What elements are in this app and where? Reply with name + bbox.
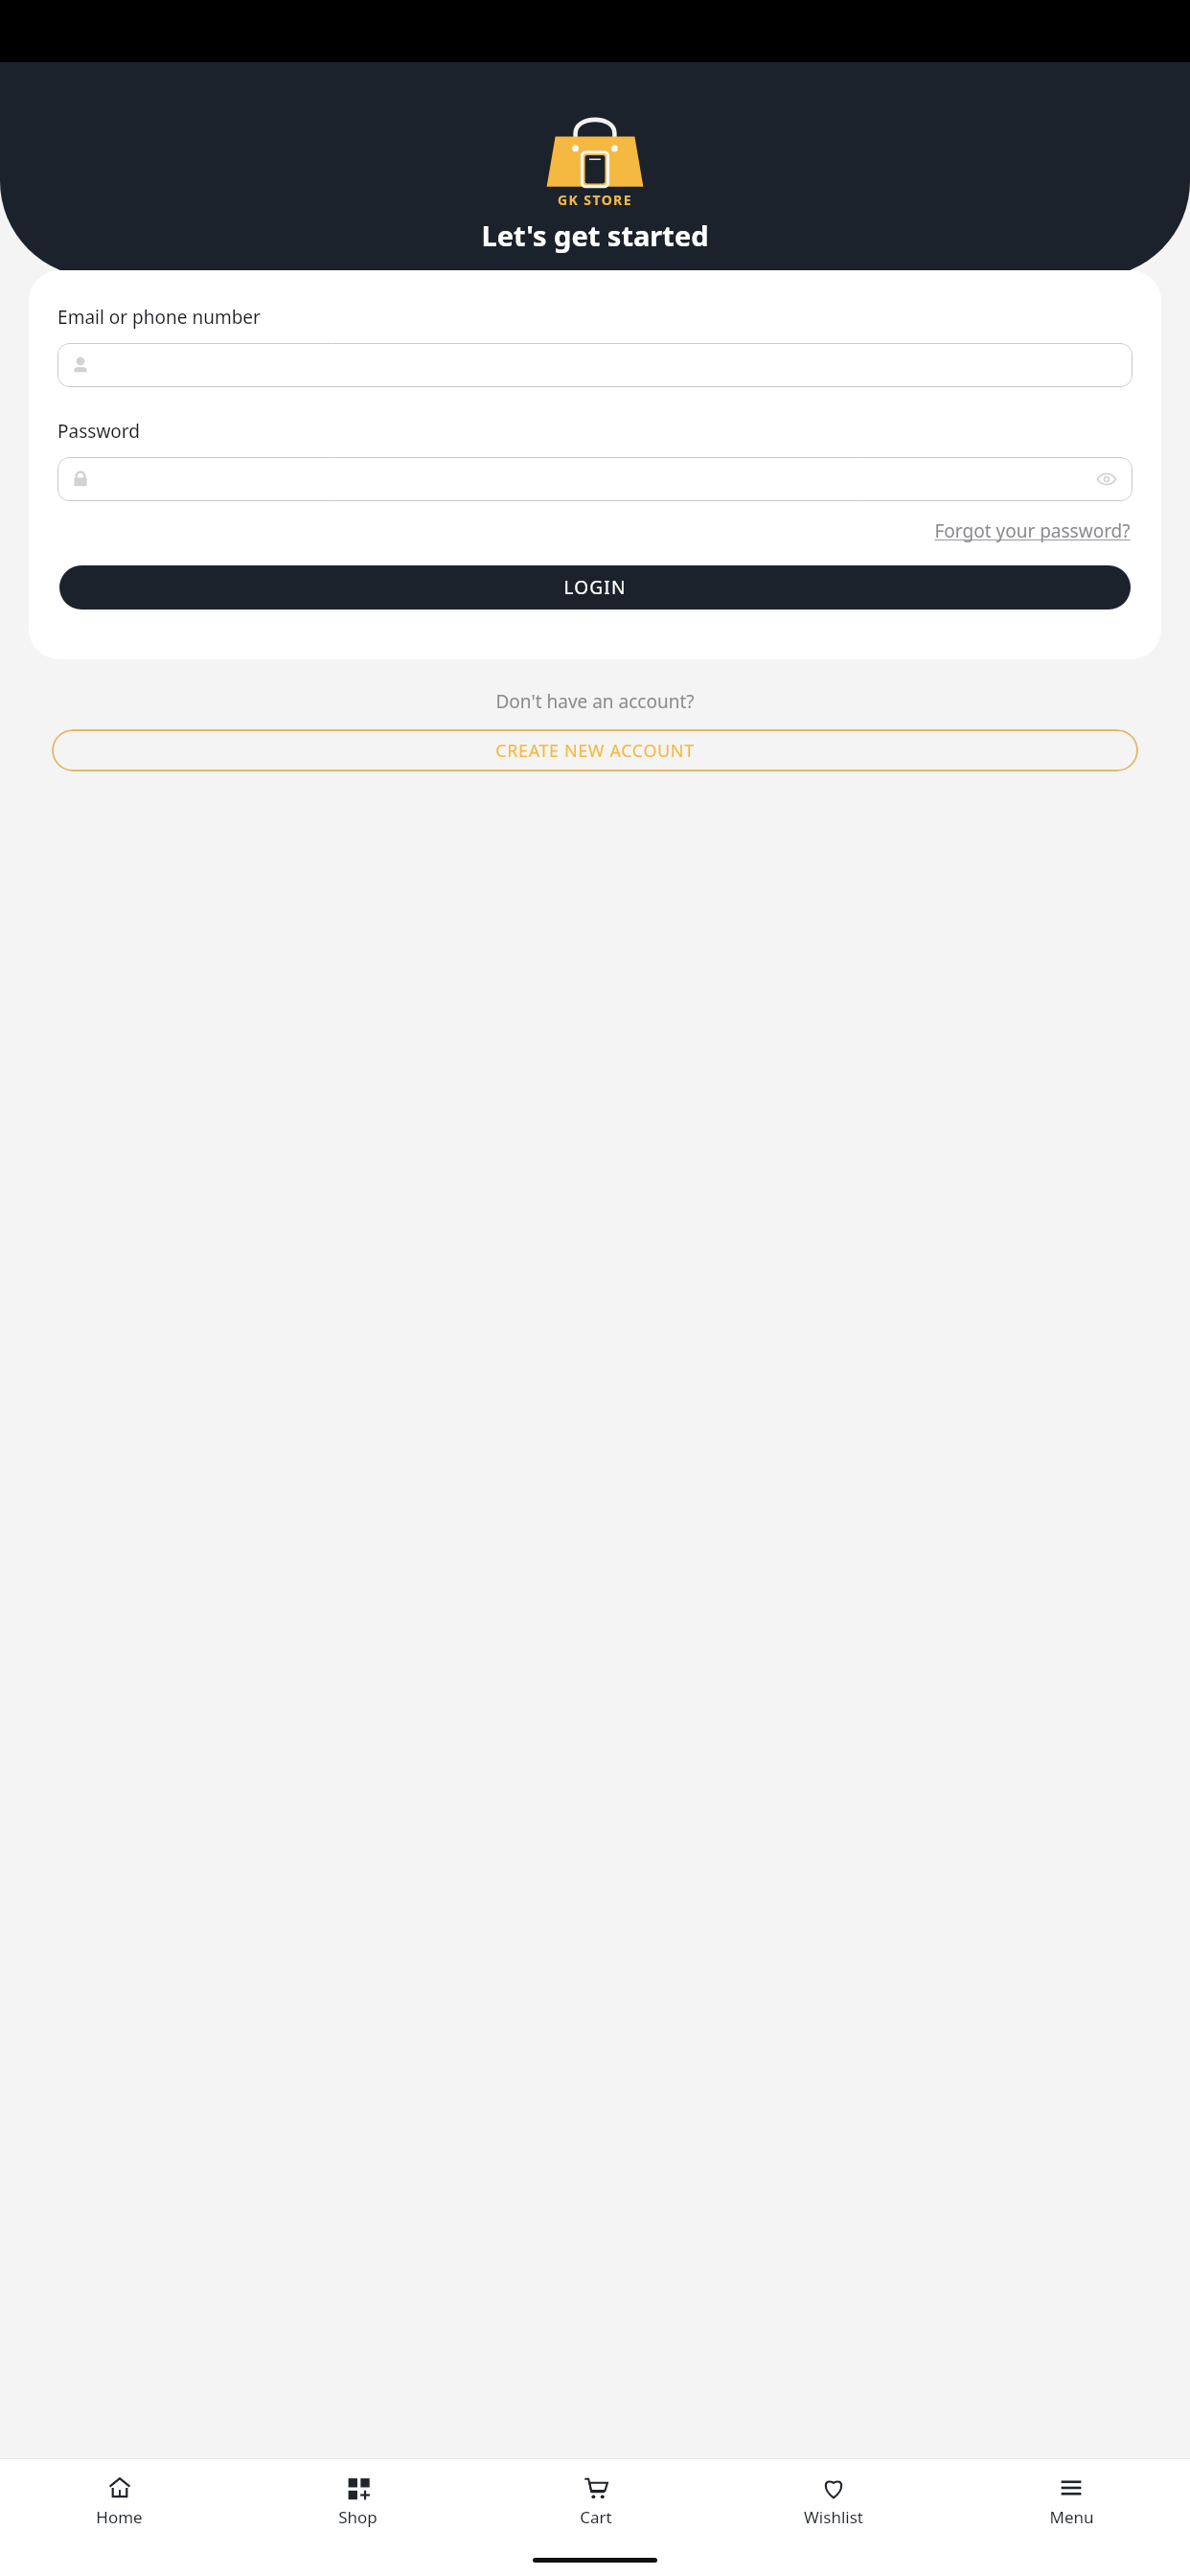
button[interactable]: Show password	[57, 457, 1133, 501]
staticText: Email or phone number	[57, 305, 261, 330]
button[interactable]: CREATE NEW ACCOUNT	[52, 729, 1138, 771]
staticText: Wishlist	[804, 2506, 863, 2528]
button[interactable]: Menu	[952, 2470, 1190, 2534]
staticText: LOGIN	[563, 575, 627, 600]
button[interactable]: Show password	[1094, 467, 1119, 492]
button[interactable]: Wishlist	[715, 2470, 952, 2534]
button[interactable]: Forgot your password?	[932, 515, 1133, 547]
staticText: Menu	[1049, 2506, 1094, 2528]
staticText: GK STORE	[558, 191, 632, 209]
staticText: Cart	[580, 2506, 612, 2528]
button[interactable]: Shop	[239, 2470, 477, 2534]
button[interactable]	[57, 343, 1133, 387]
staticText: Home	[96, 2506, 143, 2528]
staticText: Shop	[338, 2506, 378, 2528]
staticText: Let's get started	[481, 217, 709, 254]
staticText: CREATE NEW ACCOUNT	[495, 739, 695, 763]
staticText: Don't have an account?	[495, 689, 695, 714]
staticText: Password	[57, 419, 140, 444]
button[interactable]: LOGIN	[59, 565, 1131, 609]
staticText: Forgot your password?	[934, 518, 1131, 543]
button[interactable]: Cart	[477, 2470, 715, 2534]
button[interactable]: Home	[0, 2470, 239, 2534]
